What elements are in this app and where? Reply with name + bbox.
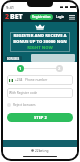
staticText: BONUSES — [7, 57, 20, 61]
staticText: 1 — [19, 66, 22, 71]
button[interactable]: Registration — [30, 14, 53, 20]
staticText: Reject bonuses — [13, 103, 36, 107]
staticText: 22bet.ng — [35, 149, 49, 153]
staticText: With Register code — [9, 91, 38, 95]
staticText: +234 — [15, 78, 23, 82]
staticText: Registration — [32, 15, 51, 19]
button[interactable]: BONUSES — [5, 56, 22, 61]
button[interactable]: With Register code — [7, 88, 73, 98]
staticText: Login — [56, 15, 65, 19]
button[interactable]: +234 — [7, 75, 73, 85]
staticText: RIGHT NOW — [27, 45, 53, 51]
staticText: 9:41 — [6, 5, 14, 10]
staticText: 2 — [5, 12, 10, 22]
staticText: Phone number — [25, 78, 48, 82]
staticText: BONUS UP TO 30000 NGN — [13, 39, 67, 45]
staticText: STEP 2 — [34, 115, 47, 120]
button[interactable]: STEP 2 — [7, 113, 73, 122]
button[interactable]: 2 — [56, 65, 63, 72]
staticText: 2 — [58, 66, 61, 71]
button[interactable]: 2 — [5, 12, 23, 22]
button[interactable]: Login — [55, 15, 66, 19]
staticText: REGISTER AND RECEIVE A — [13, 33, 67, 39]
button[interactable]: Menu — [68, 14, 75, 21]
staticText: BET — [10, 12, 23, 22]
button[interactable]: 1 — [17, 65, 24, 72]
button[interactable]: Reject bonuses — [7, 101, 73, 109]
